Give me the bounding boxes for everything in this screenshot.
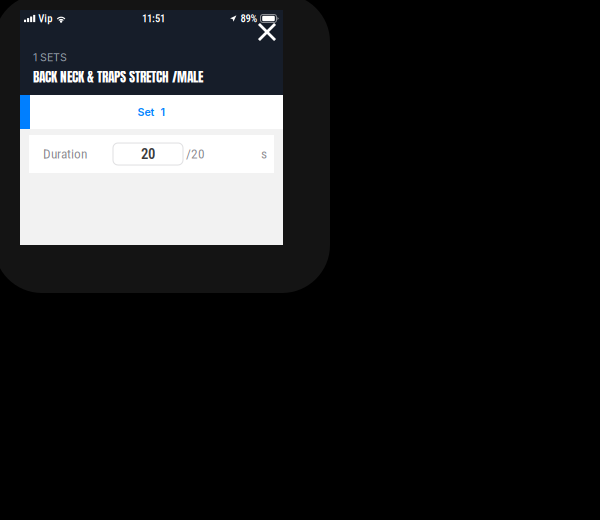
staticText: 1 SETS	[33, 51, 67, 64]
button[interactable]: 20	[113, 143, 183, 165]
staticText: 89%	[240, 12, 257, 25]
staticText: 20	[141, 145, 155, 163]
button[interactable]: Close	[251, 18, 283, 46]
staticText: Set 1	[137, 105, 165, 118]
staticText: /20	[186, 146, 205, 162]
staticText: Duration	[43, 146, 87, 162]
button[interactable]: Set 1	[20, 95, 283, 129]
staticText: 11:51	[142, 12, 165, 25]
staticText: BACK NECK & TRAPS STRETCH /MALE	[33, 67, 203, 87]
staticText: Vip	[38, 12, 52, 25]
staticText: s	[261, 146, 267, 162]
